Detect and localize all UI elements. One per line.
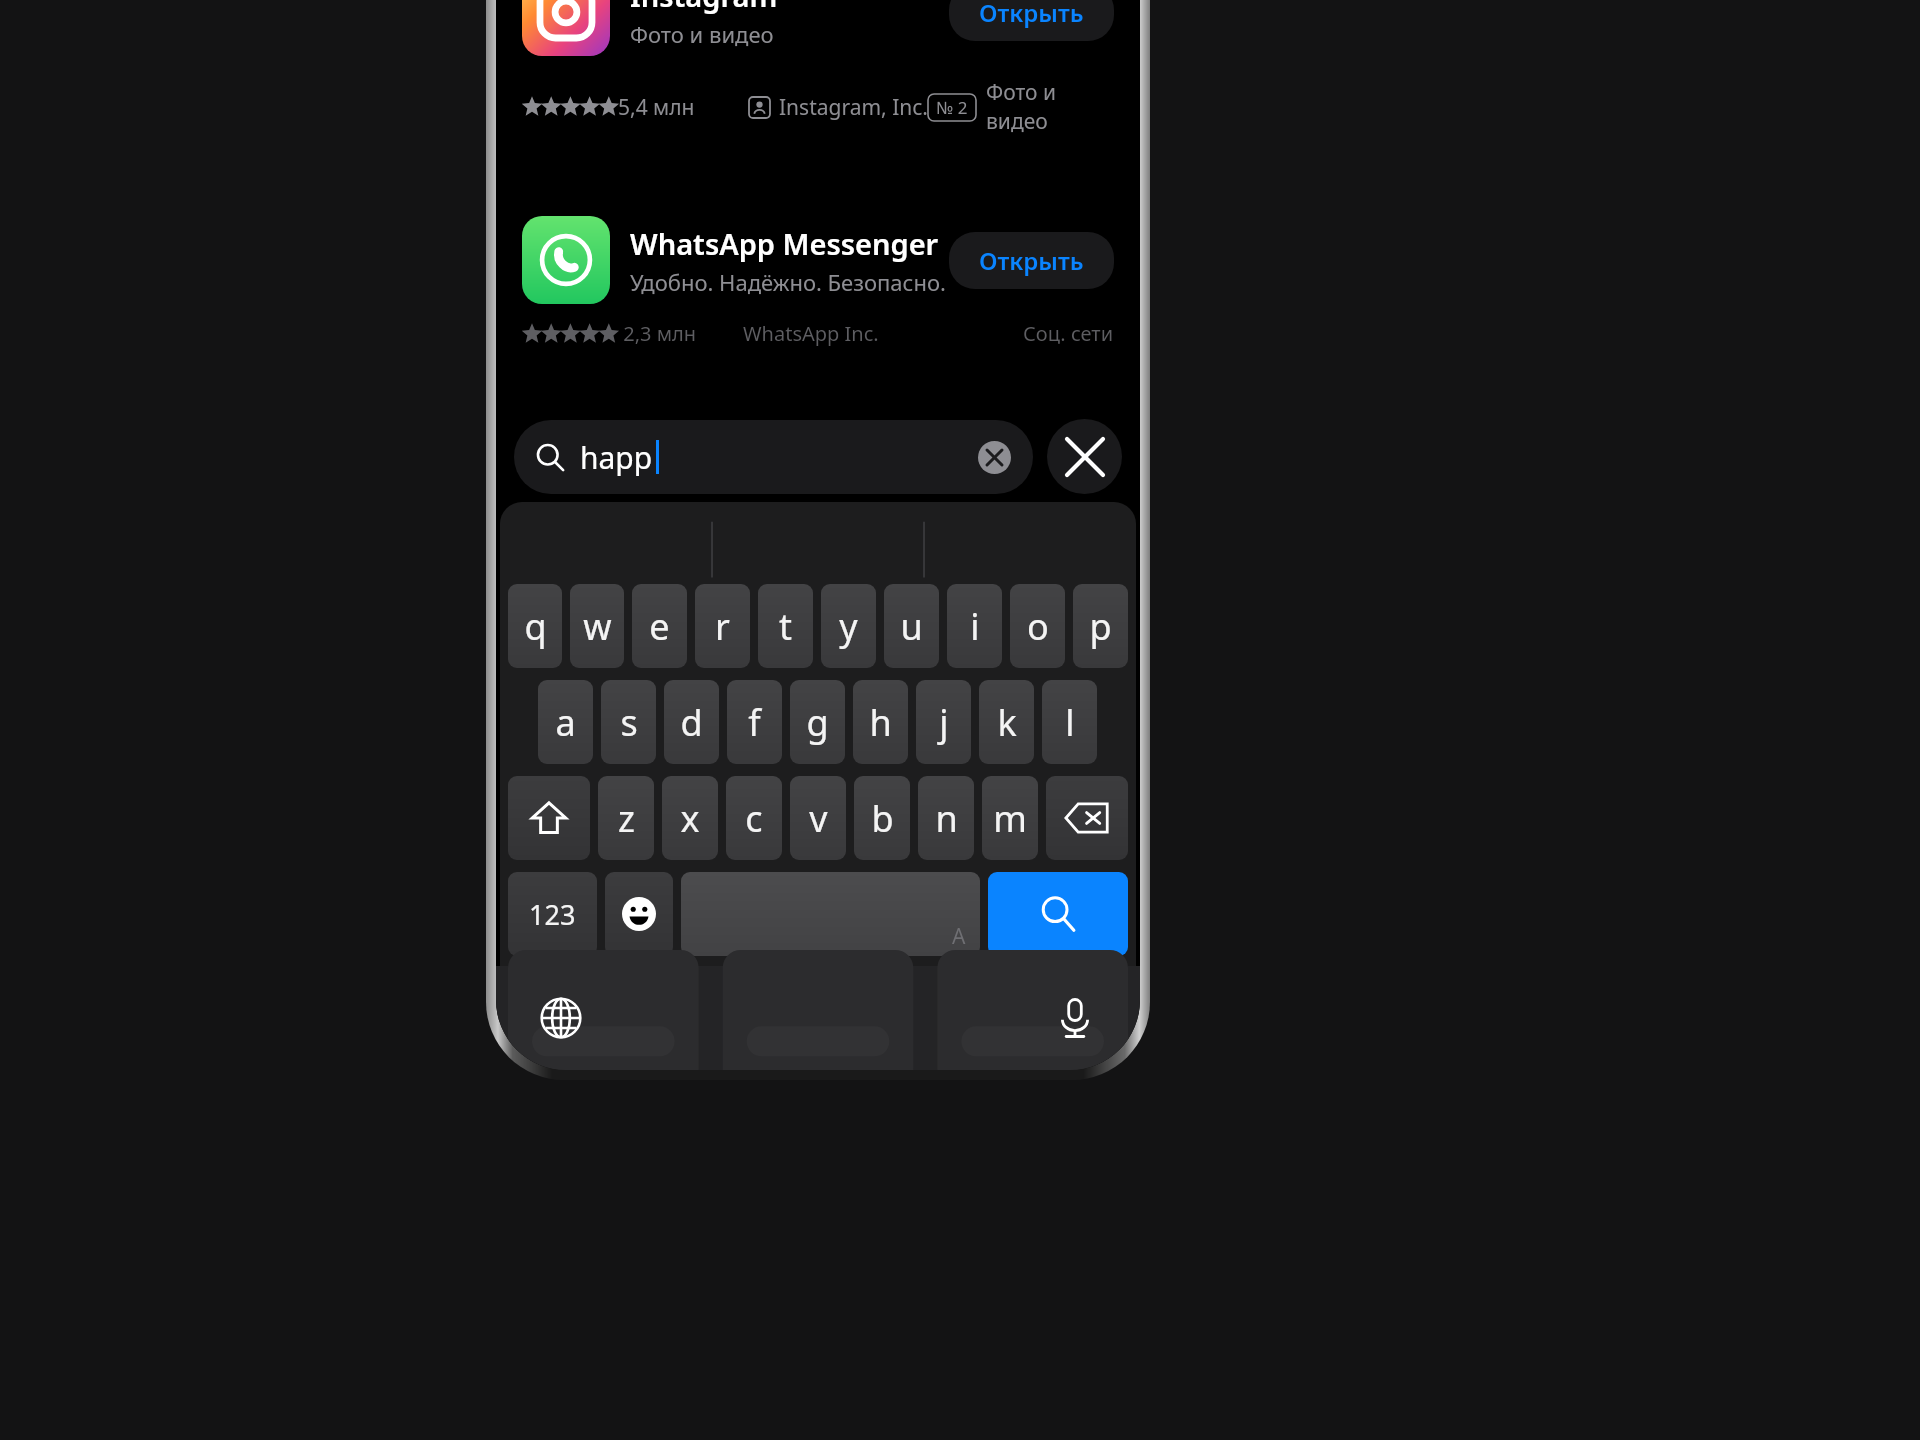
staticText: c (745, 794, 763, 843)
button[interactable]: Очистить текст (978, 441, 1011, 474)
staticText: h (869, 698, 892, 747)
staticText: d (680, 698, 703, 747)
staticText: o (1027, 602, 1049, 651)
staticText: 2,3 млн (618, 320, 697, 347)
button[interactable]: a (538, 680, 593, 764)
staticText: r (715, 602, 730, 651)
button[interactable]: f (727, 680, 782, 764)
staticText: k (997, 698, 1017, 747)
staticText: Открыть (979, 244, 1084, 277)
button[interactable]: x (662, 776, 718, 860)
button[interactable]: d (664, 680, 719, 764)
button[interactable]: c (726, 776, 782, 860)
staticText: s (620, 698, 638, 747)
button[interactable]: v (790, 776, 846, 860)
button[interactable]: s (601, 680, 656, 764)
staticText: Instagram, Inc. (779, 93, 928, 122)
button[interactable]: z (598, 776, 654, 860)
button[interactable]: b (854, 776, 910, 860)
button[interactable]: Сменить язык (530, 987, 592, 1049)
staticText: n (935, 794, 958, 843)
staticText: WhatsApp Messenger (630, 224, 939, 263)
button[interactable]: Shift (508, 776, 590, 860)
staticText: Удобно. Надёжно. Безопасно. (630, 267, 946, 297)
staticText: Соц. сети (1023, 320, 1114, 347)
button[interactable]: i (947, 584, 1002, 668)
staticText: l (1065, 698, 1075, 747)
staticText: x (680, 794, 700, 843)
button[interactable]: n (918, 776, 974, 860)
button[interactable]: r (695, 584, 750, 668)
button[interactable]: Голосовой ввод (1044, 987, 1106, 1049)
staticText: f (748, 698, 761, 747)
staticText: happ (580, 437, 653, 478)
button[interactable]: m (982, 776, 1038, 860)
staticText: Фото и видео (630, 19, 774, 49)
staticText: Открыть (979, 0, 1084, 29)
button[interactable]: y (821, 584, 876, 668)
button[interactable]: happ (514, 420, 1033, 494)
staticText: u (900, 602, 923, 651)
staticText: j (939, 698, 949, 747)
staticText: 5,4 млн (618, 93, 695, 122)
button[interactable]: Пробел (681, 872, 980, 956)
button[interactable]: p (1073, 584, 1128, 668)
staticText: p (1089, 602, 1112, 651)
button[interactable]: q (508, 584, 562, 668)
staticText: a (555, 698, 576, 747)
button[interactable]: Открыть (949, 0, 1114, 41)
staticText: m (993, 794, 1027, 843)
button[interactable]: 123 (508, 872, 597, 956)
button[interactable]: Эмодзи (605, 872, 673, 956)
staticText: 123 (529, 896, 576, 933)
staticText: b (871, 794, 894, 843)
button[interactable]: Искать (988, 872, 1128, 956)
button[interactable]: e (632, 584, 687, 668)
staticText: A (952, 922, 966, 951)
staticText: v (809, 794, 828, 843)
button[interactable]: u (884, 584, 939, 668)
staticText: WhatsApp Inc. (743, 320, 879, 347)
staticText: t (779, 602, 792, 651)
button[interactable]: Удалить (1046, 776, 1128, 860)
button[interactable]: g (790, 680, 845, 764)
button[interactable]: k (979, 680, 1034, 764)
button[interactable]: Открыть (949, 232, 1114, 289)
staticText: g (806, 698, 829, 747)
staticText: w (583, 602, 612, 651)
button[interactable]: w (570, 584, 624, 668)
button[interactable]: o (1010, 584, 1065, 668)
staticText: Instagram (630, 0, 778, 15)
button[interactable]: h (853, 680, 908, 764)
staticText: y (839, 602, 858, 651)
button[interactable]: l (1042, 680, 1097, 764)
button[interactable]: j (916, 680, 971, 764)
staticText: q (524, 602, 547, 651)
staticText: i (970, 602, 980, 651)
button[interactable]: t (758, 584, 813, 668)
staticText: e (649, 602, 670, 651)
button[interactable]: Закрыть поиск (1047, 419, 1122, 494)
staticText: z (618, 794, 635, 843)
staticText: Фото и видео (986, 78, 1114, 136)
staticText: № 2 (936, 96, 968, 119)
